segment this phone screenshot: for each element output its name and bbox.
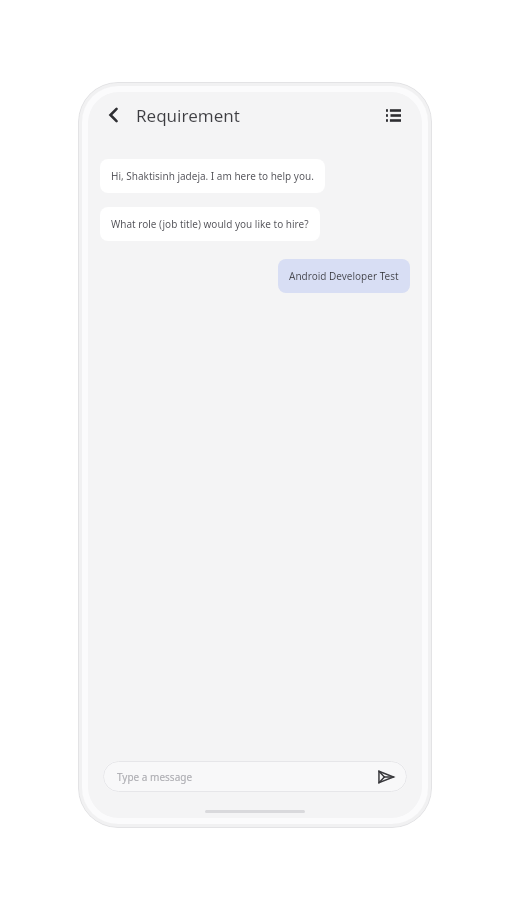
button[interactable]: Android Developer Test <box>278 259 410 293</box>
button[interactable]: Hi, Shaktisinh jadeja. I am here to help… <box>100 159 325 193</box>
button[interactable]: Type a message <box>103 761 407 792</box>
button[interactable]: What role (job title) would you like to … <box>100 207 320 241</box>
button[interactable]: Menu <box>380 102 406 128</box>
staticText: Type a message <box>117 770 375 784</box>
staticText: What role (job title) would you like to … <box>111 217 309 231</box>
staticText: Hi, Shaktisinh jadeja. I am here to help… <box>111 169 314 183</box>
button[interactable]: Send <box>375 766 397 788</box>
button[interactable]: Back <box>100 101 128 129</box>
staticText: Android Developer Test <box>289 269 399 283</box>
staticText: Requirement <box>136 104 240 127</box>
